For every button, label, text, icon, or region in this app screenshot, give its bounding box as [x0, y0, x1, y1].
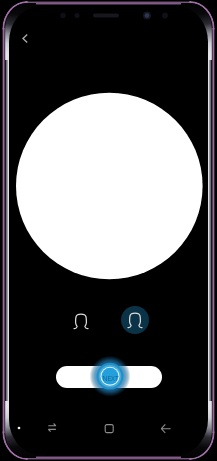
- button[interactable]: Headset with microphone: [121, 306, 149, 334]
- button[interactable]: Home: [98, 417, 120, 439]
- button[interactable]: Headphones: [67, 307, 95, 335]
- button[interactable]: [56, 366, 162, 388]
- button[interactable]: Next: [91, 357, 129, 395]
- staticText: NEXT: [102, 374, 119, 383]
- button[interactable]: Back: [155, 417, 177, 439]
- button[interactable]: Recent apps: [41, 417, 63, 439]
- button[interactable]: Back: [14, 27, 36, 49]
